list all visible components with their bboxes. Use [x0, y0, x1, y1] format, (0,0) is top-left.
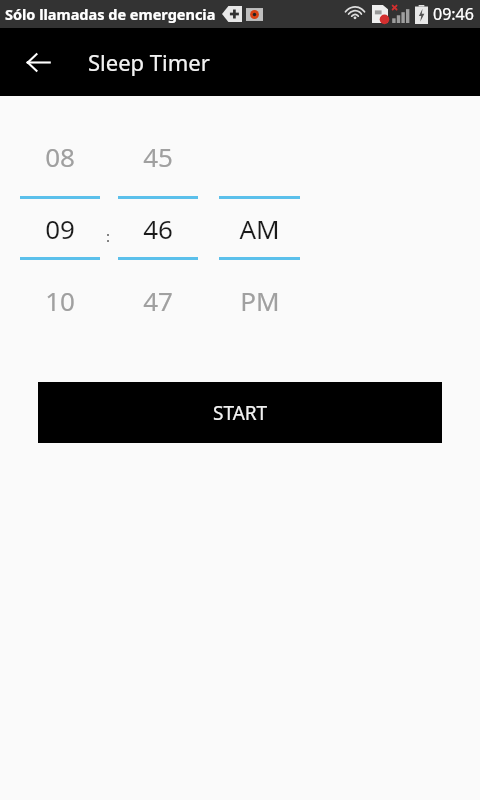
staticText: 46	[143, 211, 173, 246]
staticText: 09	[45, 211, 75, 246]
button[interactable]: START	[38, 382, 442, 443]
other: Battery charging	[415, 5, 428, 24]
staticText: 45	[143, 139, 173, 174]
other: No SIM	[372, 5, 388, 23]
staticText: Sólo llamadas de emergencia	[5, 4, 216, 24]
staticText: Sleep Timer	[88, 47, 210, 77]
staticText: 08	[45, 139, 75, 174]
other: Signal	[391, 5, 411, 23]
staticText: START	[213, 400, 268, 426]
staticText: AM	[239, 211, 280, 246]
staticText: :	[106, 226, 111, 246]
button[interactable]: AM	[219, 113, 300, 338]
staticText: 47	[143, 283, 173, 318]
staticText: PM	[240, 283, 280, 318]
other: Wi-Fi	[345, 6, 365, 22]
button[interactable]: 08	[20, 113, 100, 338]
button[interactable]: 45	[118, 113, 198, 338]
staticText: 10	[45, 283, 75, 318]
staticText: 09:46	[433, 3, 474, 25]
button[interactable]: Back	[16, 40, 60, 84]
